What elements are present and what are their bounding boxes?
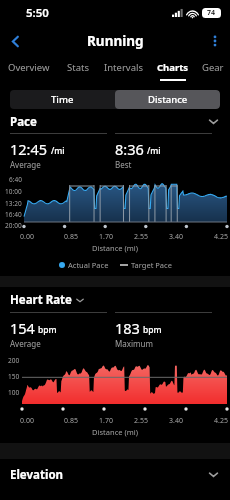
staticText: bpm: [143, 324, 162, 336]
button[interactable]: Heart Rate: [0, 292, 230, 307]
button[interactable]: Distance: [115, 90, 220, 109]
staticText: Heart Rate: [10, 292, 72, 307]
staticText: 20:00: [5, 221, 22, 230]
staticText: 13:20: [5, 199, 22, 208]
staticText: 12:45: [10, 139, 48, 159]
button[interactable]: Elevation: [0, 467, 230, 482]
staticText: bpm: [38, 324, 57, 336]
staticText: 16:40: [5, 210, 22, 219]
staticText: 0.00: [20, 416, 34, 426]
staticText: Distance (mi): [0, 427, 230, 437]
staticText: 183: [115, 318, 140, 338]
button[interactable]: Back: [0, 26, 30, 56]
staticText: Gear: [202, 61, 224, 74]
button[interactable]: Stats: [58, 56, 97, 83]
staticText: 0.85: [64, 416, 78, 426]
staticText: 6:40: [9, 175, 22, 184]
staticText: 100: [8, 388, 20, 397]
staticText: 150: [8, 372, 20, 381]
staticText: Elevation: [10, 467, 64, 482]
button[interactable]: More options: [200, 26, 230, 56]
staticText: Time: [51, 93, 74, 106]
staticText: 1.70: [99, 232, 113, 242]
staticText: 4.25: [214, 232, 228, 242]
staticText: 2.55: [134, 232, 148, 242]
staticText: 74: [207, 8, 216, 18]
staticText: 4.25: [214, 416, 228, 426]
staticText: 10:00: [5, 187, 22, 196]
button[interactable]: Charts: [150, 56, 195, 83]
staticText: Overview: [8, 61, 50, 74]
button[interactable]: Time: [10, 90, 115, 109]
staticText: 0.85: [64, 232, 78, 242]
staticText: 2.55: [134, 416, 148, 426]
staticText: Average: [10, 338, 41, 349]
button[interactable]: Pace: [0, 114, 230, 129]
staticText: Pace: [10, 114, 37, 129]
staticText: Maximum: [115, 338, 153, 349]
staticText: Best: [115, 159, 132, 170]
button[interactable]: Intervals: [97, 56, 150, 83]
staticText: 1.70: [99, 416, 113, 426]
staticText: 3.40: [169, 232, 183, 242]
staticText: 0.00: [20, 232, 34, 242]
staticText: 154: [10, 318, 35, 338]
staticText: 5:50: [26, 5, 49, 21]
button[interactable]: Gear: [195, 56, 230, 83]
staticText: /mi: [147, 145, 161, 157]
staticText: Target Pace: [131, 260, 172, 270]
staticText: Actual Pace: [68, 260, 109, 270]
staticText: Average: [10, 159, 41, 170]
staticText: 200: [8, 356, 20, 365]
staticText: Distance (mi): [0, 243, 230, 253]
button[interactable]: Overview: [0, 56, 58, 83]
staticText: Running: [87, 32, 144, 50]
staticText: Charts: [157, 61, 189, 74]
staticText: /mi: [51, 145, 65, 157]
staticText: 8:36: [115, 139, 144, 159]
staticText: 3.40: [169, 416, 183, 426]
staticText: Intervals: [104, 61, 143, 74]
staticText: Stats: [67, 61, 89, 74]
staticText: Distance: [148, 93, 188, 106]
